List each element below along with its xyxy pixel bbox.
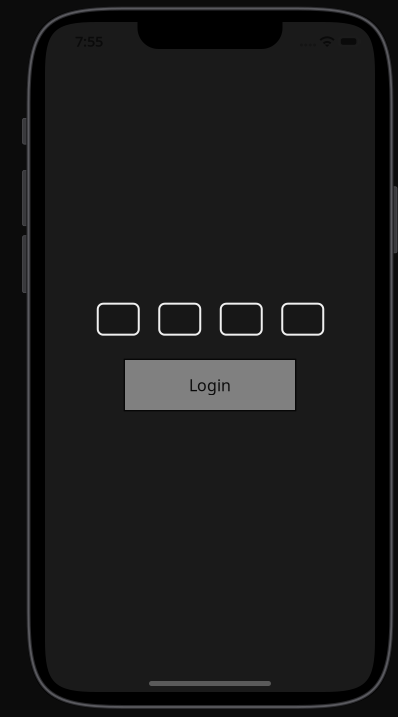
staticText: 7:55 bbox=[75, 31, 103, 51]
button[interactable]: PIN digit bbox=[97, 303, 140, 336]
button[interactable]: PIN digit bbox=[281, 303, 324, 336]
staticText: Login bbox=[189, 374, 231, 396]
button[interactable]: PIN digit bbox=[158, 303, 201, 336]
button[interactable]: Login bbox=[125, 360, 295, 410]
button[interactable]: PIN digit bbox=[220, 303, 263, 336]
